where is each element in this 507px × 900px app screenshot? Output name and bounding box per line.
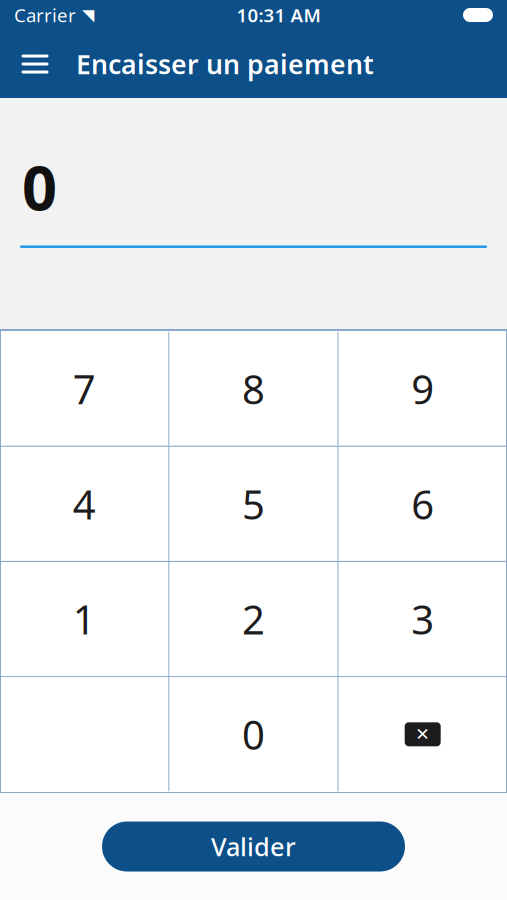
button[interactable]: Menu [8, 38, 62, 90]
staticText: 3 [411, 592, 434, 646]
staticText: 7 [73, 362, 96, 415]
button[interactable]: Empty key [0, 677, 168, 791]
button[interactable]: 9 [339, 332, 507, 446]
button[interactable]: Valider [102, 821, 405, 871]
staticText: 4 [73, 477, 96, 530]
staticText: Carrier [14, 3, 76, 27]
staticText: 0 [22, 146, 57, 227]
button[interactable]: 7 [0, 332, 168, 446]
staticText: Encaisser un paiement [76, 46, 374, 82]
staticText: 9 [411, 362, 434, 415]
button[interactable]: Delete [339, 677, 507, 791]
button[interactable]: 0 [169, 677, 337, 791]
staticText: 1 [73, 592, 96, 646]
button[interactable]: 5 [169, 447, 337, 561]
staticText: ◥ [82, 6, 94, 24]
button[interactable]: 4 [0, 447, 168, 561]
staticText: 10:31 AM [236, 3, 320, 27]
staticText: 2 [242, 592, 265, 646]
staticText: ✕ [415, 724, 430, 744]
button[interactable]: 8 [169, 332, 337, 446]
button[interactable]: 1 [0, 562, 168, 676]
staticText: 8 [242, 362, 265, 415]
button[interactable]: 6 [339, 447, 507, 561]
staticText: 5 [242, 477, 265, 530]
staticText: 0 [242, 708, 265, 761]
staticText: 6 [411, 477, 434, 530]
button[interactable]: 3 [339, 562, 507, 676]
button[interactable]: 2 [169, 562, 337, 676]
staticText: Valider [211, 830, 296, 863]
